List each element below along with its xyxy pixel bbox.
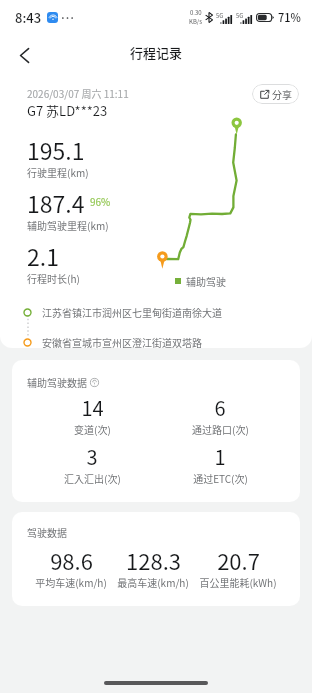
- staticText: 行程时长(h): [27, 271, 80, 285]
- staticText: 20.7: [217, 544, 260, 576]
- staticText: 5G: [236, 11, 244, 20]
- button[interactable]: 20.7: [199, 544, 277, 590]
- staticText: 2.1: [27, 239, 59, 272]
- staticText: 2026/03/07 周六 11:11: [27, 86, 129, 100]
- staticText: 辅助驾驶里程(km): [27, 218, 109, 232]
- staticText: 行程记录: [130, 43, 183, 62]
- staticText: 3: [86, 442, 98, 471]
- staticText: 14: [81, 393, 104, 422]
- button[interactable]: 分享: [252, 84, 299, 104]
- staticText: 71%: [278, 9, 301, 25]
- button[interactable]: 1: [156, 442, 284, 485]
- staticText: 5G: [216, 11, 224, 20]
- staticText: 安徽省宣城市宣州区澄江街道双塔路: [42, 335, 202, 348]
- staticText: 分享: [272, 87, 292, 101]
- staticText: 6: [214, 393, 226, 422]
- button[interactable]: 安徽省宣城市宣州区澄江街道双塔路: [0, 334, 312, 348]
- button[interactable]: 3: [28, 442, 156, 485]
- staticText: 0.30: [190, 8, 202, 17]
- staticText: 1: [214, 442, 226, 471]
- staticText: 辅助驾驶: [186, 274, 226, 288]
- staticText: 195.1: [27, 133, 85, 166]
- staticText: 8:43: [15, 8, 42, 27]
- button[interactable]: 江苏省镇江市润州区七里甸街道南徐大道: [0, 304, 312, 320]
- staticText: 变道(次): [74, 422, 111, 436]
- staticText: 187.4: [27, 186, 85, 219]
- staticText: 96%: [90, 194, 111, 208]
- staticText: 98.6: [50, 544, 93, 576]
- staticText: 通过ETC(次): [193, 471, 248, 485]
- button[interactable]: 14: [28, 393, 156, 436]
- staticText: 最高车速(km/h): [117, 575, 189, 589]
- staticText: 128.3: [126, 544, 181, 576]
- button[interactable]: 128.3: [117, 544, 189, 590]
- staticText: G7 苏LD***23: [27, 101, 108, 120]
- staticText: 平均车速(km/h): [35, 575, 107, 589]
- staticText: 行驶里程(km): [27, 165, 89, 179]
- staticText: 驾驶数据: [27, 525, 67, 539]
- button[interactable]: 98.6: [35, 544, 107, 590]
- staticText: 辅助驾驶数据: [27, 375, 87, 389]
- staticText: KB/s: [189, 17, 202, 26]
- button[interactable]: Back: [9, 40, 39, 70]
- button[interactable]: 6: [156, 393, 284, 436]
- staticText: 江苏省镇江市润州区七里甸街道南徐大道: [42, 305, 222, 319]
- staticText: 通过路口(次): [192, 422, 249, 436]
- staticText: 汇入汇出(次): [64, 471, 121, 485]
- staticText: 百公里能耗(kWh): [199, 575, 277, 589]
